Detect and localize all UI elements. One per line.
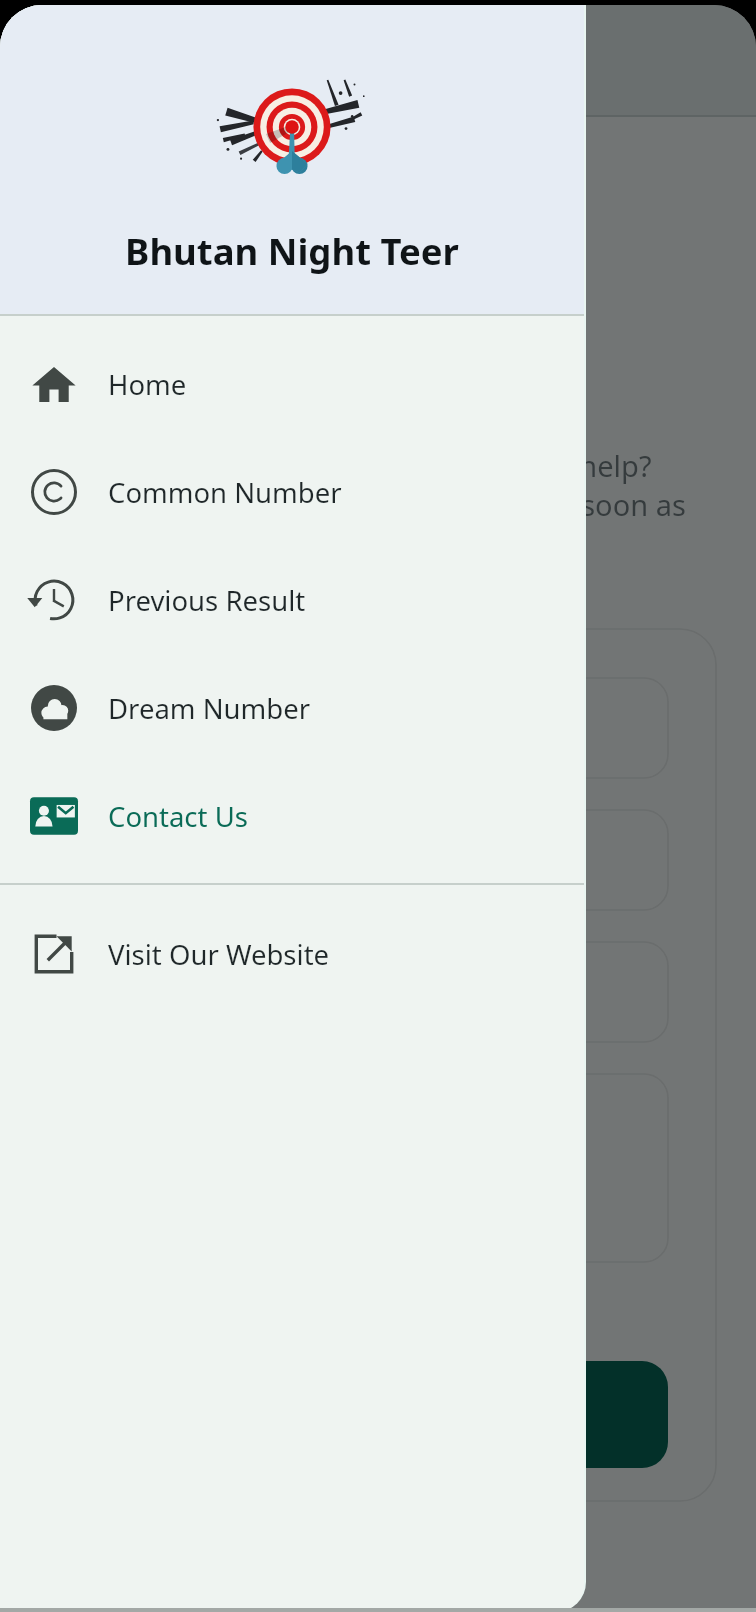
button[interactable]: Send message xyxy=(68,1361,668,1468)
staticText: Common Number xyxy=(108,474,342,511)
staticText: Previous Result xyxy=(108,582,306,619)
staticText: Home xyxy=(108,366,187,403)
button[interactable]: Close navigation drawer xyxy=(586,5,756,1612)
staticText: Do you have any query or need some help?… xyxy=(64,446,686,563)
staticText: Dream Number xyxy=(108,690,311,727)
staticText: Visit Our Website xyxy=(108,936,330,973)
button[interactable]: Dream Number xyxy=(0,654,584,762)
button[interactable]: Visit Our Website xyxy=(0,900,584,1008)
button[interactable]: Contact Us xyxy=(0,762,584,870)
staticText: Contact Us xyxy=(108,798,248,835)
button[interactable]: Common Number xyxy=(0,438,584,546)
button[interactable]: Previous Result xyxy=(0,546,584,654)
staticText: Bhutan Night Teer xyxy=(0,226,584,276)
button[interactable]: Home xyxy=(0,330,584,438)
